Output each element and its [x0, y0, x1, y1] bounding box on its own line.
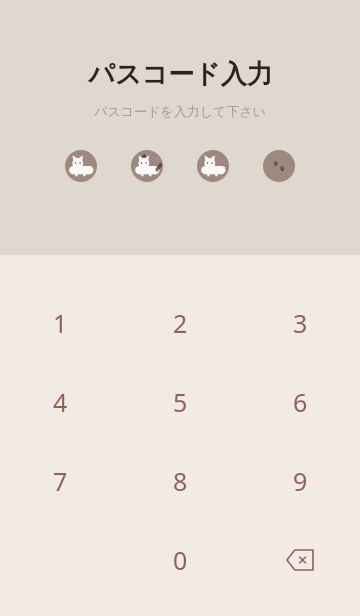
staticText: 8: [173, 464, 188, 498]
staticText: 9: [293, 464, 308, 498]
button[interactable]: 8: [120, 441, 240, 520]
staticText: 6: [293, 385, 308, 419]
button[interactable]: 9: [240, 441, 360, 520]
staticText: 2: [173, 306, 188, 340]
staticText: パスコード入力: [88, 58, 273, 91]
button[interactable]: 5: [120, 362, 240, 441]
staticText: 5: [173, 385, 188, 419]
button[interactable]: 3: [240, 283, 360, 362]
staticText: 4: [53, 385, 68, 419]
button[interactable]: 0: [120, 520, 240, 599]
button[interactable]: Backspace: [240, 520, 360, 599]
staticText: 0: [173, 543, 188, 577]
button[interactable]: 6: [240, 362, 360, 441]
staticText: パスコードを入力して下さい: [94, 103, 266, 119]
button[interactable]: 7: [0, 441, 120, 520]
button[interactable]: 2: [120, 283, 240, 362]
button[interactable]: 4: [0, 362, 120, 441]
staticText: 7: [53, 464, 68, 498]
staticText: 1: [53, 306, 68, 340]
staticText: 3: [293, 306, 308, 340]
button[interactable]: 1: [0, 283, 120, 362]
